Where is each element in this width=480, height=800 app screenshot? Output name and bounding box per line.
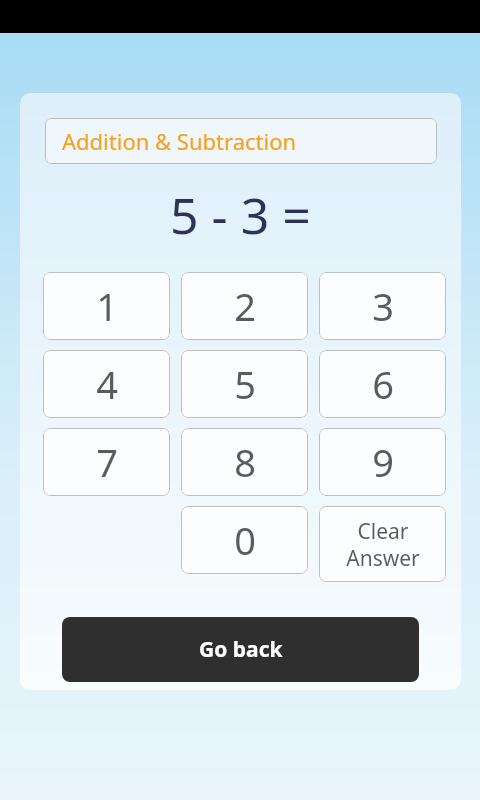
staticText: 7 bbox=[96, 436, 118, 488]
button[interactable]: 5 bbox=[181, 350, 308, 418]
button[interactable]: Go back bbox=[62, 617, 419, 682]
staticText: Clear Answer bbox=[346, 517, 420, 572]
button[interactable]: Clear Answer bbox=[319, 506, 446, 582]
staticText: Addition & Subtraction bbox=[62, 126, 297, 156]
staticText: 9 bbox=[372, 436, 394, 488]
staticText: Go back bbox=[199, 635, 283, 664]
button[interactable]: 2 bbox=[181, 272, 308, 340]
staticText: 2 bbox=[234, 280, 256, 332]
button[interactable]: 9 bbox=[319, 428, 446, 496]
staticText: 4 bbox=[96, 358, 118, 410]
button[interactable]: 4 bbox=[43, 350, 170, 418]
staticText: 1 bbox=[96, 280, 118, 332]
button[interactable]: 1 bbox=[43, 272, 170, 340]
button[interactable]: 8 bbox=[181, 428, 308, 496]
button[interactable]: 6 bbox=[319, 350, 446, 418]
staticText: 5 bbox=[234, 358, 256, 410]
staticText: 3 bbox=[372, 280, 394, 332]
staticText: 8 bbox=[234, 436, 256, 488]
button[interactable]: 7 bbox=[43, 428, 170, 496]
button[interactable]: 3 bbox=[319, 272, 446, 340]
staticText: 6 bbox=[372, 358, 394, 410]
staticText: 0 bbox=[234, 514, 256, 566]
button[interactable]: 0 bbox=[181, 506, 308, 574]
staticText: 5 - 3 = bbox=[170, 181, 311, 249]
button[interactable]: Addition & Subtraction bbox=[45, 118, 437, 164]
